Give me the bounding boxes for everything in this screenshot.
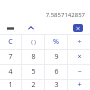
button[interactable]: 3 (45, 80, 67, 90)
staticText: 9 (54, 52, 59, 62)
button[interactable]: Backspace (73, 24, 83, 32)
staticText: × (77, 52, 82, 62)
staticText: 3 (54, 80, 59, 90)
button[interactable]: More functions (26, 23, 36, 33)
staticText: 8 (31, 52, 36, 62)
button[interactable]: 2 (22, 80, 44, 90)
button[interactable]: 9 (45, 50, 67, 64)
button[interactable]: 6 (45, 65, 67, 79)
button[interactable]: ÷ (68, 35, 90, 49)
button[interactable]: 5 (22, 65, 44, 79)
staticText: % (53, 37, 59, 47)
button[interactable]: ( ) (22, 35, 44, 49)
staticText: ( ) (31, 39, 36, 46)
staticText: + (77, 80, 82, 90)
button[interactable]: Angle unit (5, 24, 15, 33)
staticText: 6 (54, 67, 59, 77)
button[interactable]: C (0, 35, 21, 49)
staticText: ÷ (77, 37, 82, 47)
staticText: C (8, 37, 13, 47)
button[interactable]: 4 (0, 65, 21, 79)
button[interactable]: 7 (0, 50, 21, 64)
button[interactable]: 8 (22, 50, 44, 64)
button[interactable]: 1 (0, 80, 21, 90)
staticText: 4 (8, 67, 13, 77)
button[interactable]: − (68, 65, 90, 79)
staticText: 1 (8, 80, 13, 90)
button[interactable]: + (68, 80, 90, 90)
staticText: 5 (31, 67, 36, 77)
staticText: 2 (31, 80, 36, 90)
button[interactable]: × (68, 50, 90, 64)
staticText: − (77, 67, 82, 77)
staticText: 7.5857142857 (45, 11, 85, 19)
button[interactable]: % (45, 35, 67, 49)
staticText: 7 (8, 52, 13, 62)
